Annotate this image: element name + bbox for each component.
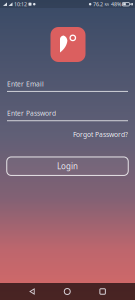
- staticText: 76.2: [93, 1, 103, 8]
- staticText: Enter Password: [7, 109, 56, 118]
- button[interactable]: Home: [64, 288, 70, 294]
- staticText: Login: [57, 161, 78, 171]
- staticText: Enter Email: [7, 79, 44, 88]
- button[interactable]: Forgot Password?: [73, 130, 128, 139]
- button[interactable]: Back: [30, 288, 35, 294]
- button[interactable]: Recents: [100, 289, 105, 294]
- staticText: Forgot Password?: [73, 130, 128, 139]
- button[interactable]: Login: [7, 157, 128, 175]
- staticText: K/s: [104, 1, 109, 7]
- button[interactable]: Enter Email: [7, 79, 128, 92]
- button[interactable]: Enter Password: [7, 109, 128, 121]
- staticText: 48%: [111, 1, 121, 8]
- staticText: 10:12: [14, 1, 27, 8]
